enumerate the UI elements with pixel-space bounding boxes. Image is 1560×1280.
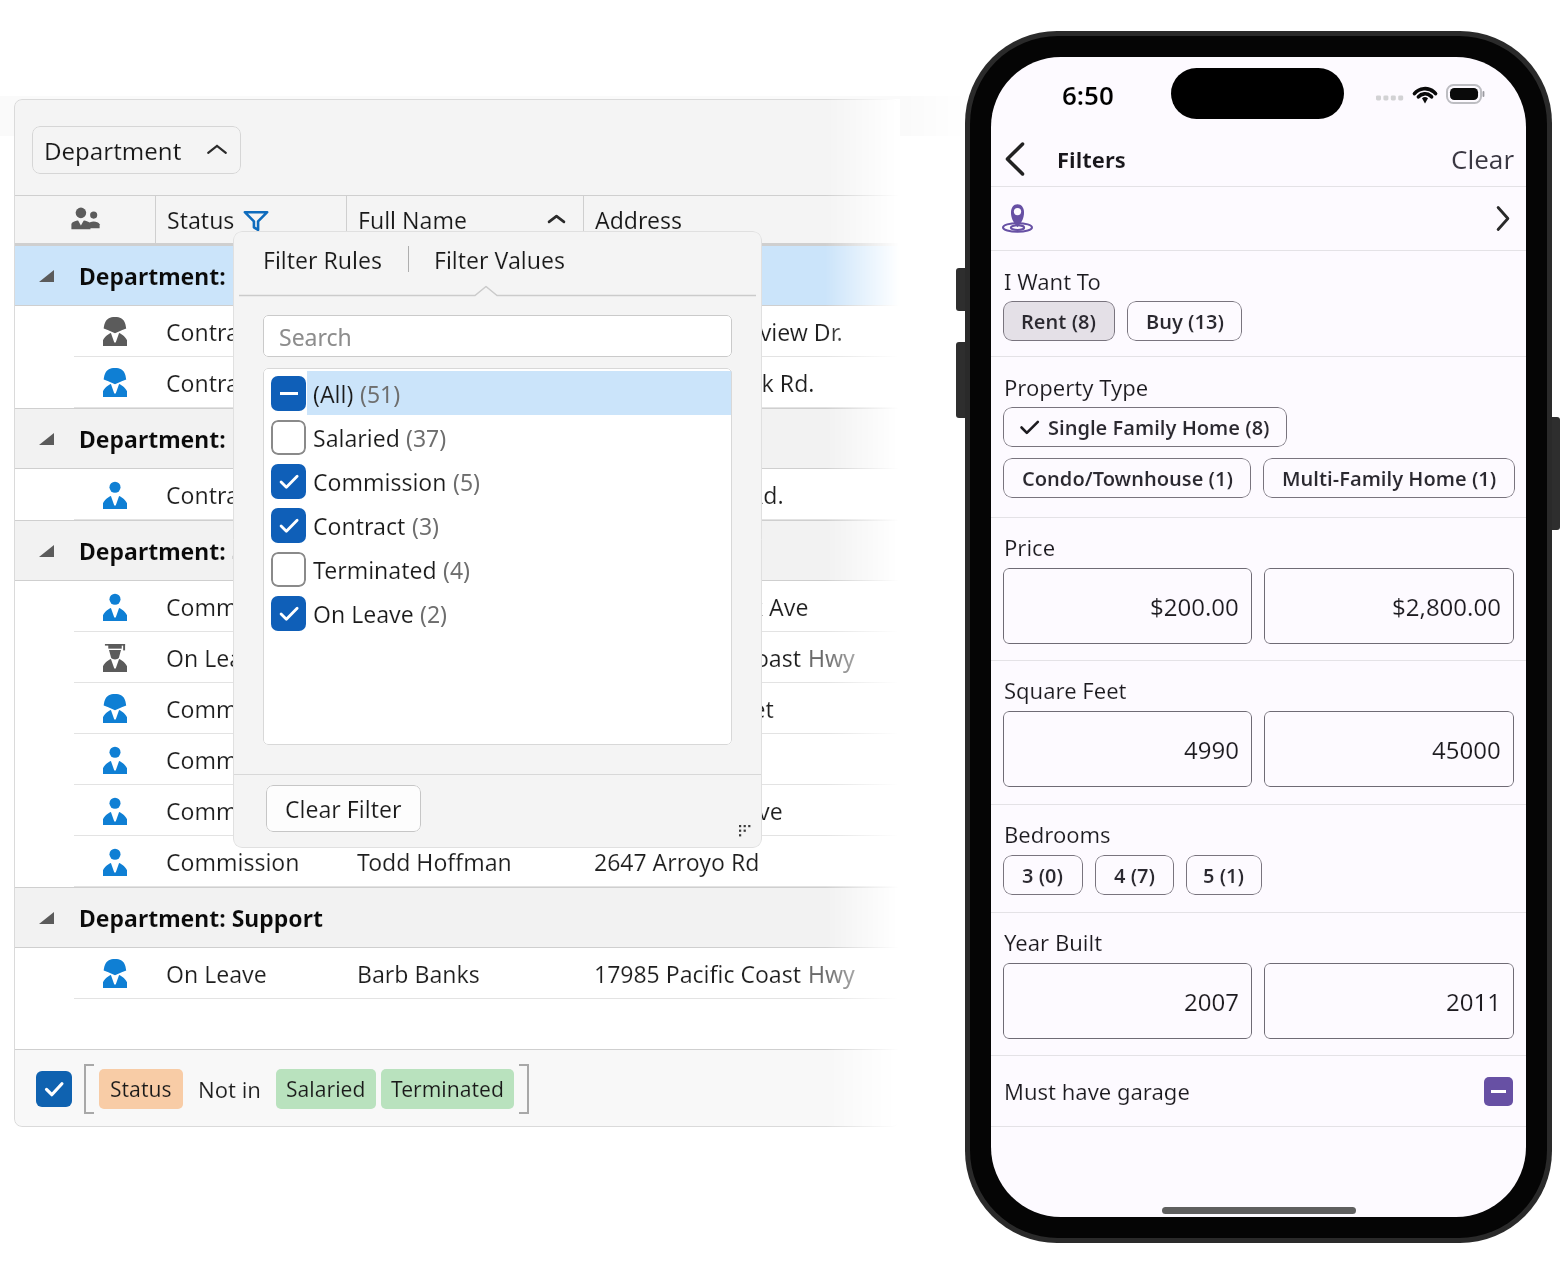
staticText: Commission <box>313 466 447 497</box>
staticText: 17985 Pacific Coast <box>594 958 808 989</box>
button[interactable]: 5 (1) <box>1186 855 1262 895</box>
staticText: Commission <box>166 591 300 622</box>
button[interactable]: Clear <box>1435 133 1526 184</box>
staticText: $200.00 <box>1150 590 1239 623</box>
staticText: Address <box>595 204 683 235</box>
staticText: Todd Hoffman <box>357 846 512 877</box>
staticText: I Want To <box>1004 266 1101 296</box>
button[interactable]: 4990 <box>1003 711 1252 787</box>
staticText: Joe Davis <box>357 479 455 510</box>
staticText: Not in <box>198 1074 261 1104</box>
button[interactable]: Buy (13) <box>1127 301 1242 341</box>
button[interactable]: Contract <box>14 469 900 520</box>
button[interactable] <box>991 187 1526 250</box>
staticText: 6:50 <box>1062 77 1114 112</box>
button[interactable]: Salaried <box>263 415 732 459</box>
button[interactable]: Contract <box>263 503 732 547</box>
staticText: On Leave <box>166 958 267 989</box>
button[interactable]: Commission <box>14 683 900 734</box>
button[interactable]: Department: Support <box>14 887 900 948</box>
staticText: Filter Values <box>434 244 565 275</box>
staticText: Contract <box>313 510 406 541</box>
staticText: Year Built <box>1004 927 1103 957</box>
staticText: Property Type <box>1004 372 1149 402</box>
button[interactable]: Terminated <box>381 1069 514 1109</box>
staticText: (2) <box>420 598 447 629</box>
staticText: Multi-Family Home (1) <box>1282 465 1497 492</box>
staticText: 4990 <box>1184 733 1239 766</box>
staticText: 5 (1) <box>1203 862 1245 889</box>
button[interactable]: Filter enabled <box>36 1071 72 1107</box>
button[interactable]: Single Family Home (8) <box>1003 407 1287 447</box>
button[interactable]: Condo/Townhouse (1) <box>1003 458 1251 498</box>
button[interactable]: Salaried <box>276 1069 376 1109</box>
button[interactable]: (All) <box>263 371 732 415</box>
staticText: 20 N Main Street <box>594 693 774 724</box>
button[interactable]: Department <box>32 126 241 174</box>
button[interactable]: On Leave <box>14 948 900 999</box>
button[interactable]: Commission <box>14 836 900 887</box>
staticText: $2,800.00 <box>1392 590 1501 623</box>
button[interactable]: 3 (0) <box>1003 855 1083 895</box>
staticText: Contract <box>166 316 259 347</box>
button[interactable]: Back <box>993 137 1037 181</box>
button[interactable]: Filter Values <box>431 238 568 281</box>
button[interactable]: Commission <box>14 734 900 785</box>
button[interactable]: Department: Engineering <box>14 245 900 306</box>
staticText: 44 Hill Rd <box>594 744 696 775</box>
button[interactable]: Search <box>263 315 732 357</box>
button[interactable]: On Leave <box>14 632 900 683</box>
staticText: Department: Marketing <box>79 423 352 454</box>
button[interactable]: Commission <box>14 785 900 836</box>
button[interactable]: On Leave <box>263 591 732 635</box>
button[interactable]: 2007 <box>1003 963 1252 1039</box>
button[interactable]: Department: Sales <box>14 520 900 581</box>
staticText: Bedrooms <box>1004 819 1111 849</box>
button[interactable]: Department: Marketing <box>14 408 900 469</box>
button[interactable]: 2011 <box>1264 963 1514 1039</box>
staticText: Commission <box>166 795 300 826</box>
staticText: Salaried <box>286 1075 366 1104</box>
staticText: Commission <box>166 693 300 724</box>
staticText: Status <box>167 204 235 235</box>
staticText: Single Family Home (8) <box>1048 414 1270 441</box>
button[interactable]: Status <box>99 1069 183 1109</box>
button[interactable]: Contract <box>14 357 900 408</box>
button[interactable]: Clear Filter <box>266 785 421 832</box>
staticText: (51) <box>360 378 401 409</box>
button[interactable]: Must have garage <box>991 1056 1526 1126</box>
staticText: Status <box>110 1075 172 1104</box>
button[interactable]: Rent (8) <box>1003 301 1115 341</box>
staticText: Square Feet <box>1004 675 1127 705</box>
staticText: Clear <box>1451 141 1515 176</box>
staticText: 760 Lakeview Ave <box>594 795 783 826</box>
staticText: 2011 <box>1446 985 1501 1018</box>
staticText: Search <box>279 321 352 352</box>
button[interactable]: Commission <box>263 459 732 503</box>
staticText: 2007 <box>1184 985 1239 1018</box>
staticText: Must have garage <box>1004 1076 1190 1106</box>
button[interactable]: Multi-Family Home (1) <box>1263 458 1515 498</box>
staticText: Price <box>1004 532 1056 562</box>
button[interactable]: $2,800.00 <box>1264 568 1514 644</box>
staticText: (3) <box>412 510 439 541</box>
staticText: Barb Banks <box>357 958 480 989</box>
staticText: Department: Sales <box>79 535 291 566</box>
button[interactable]: Filter Rules <box>260 238 386 281</box>
button[interactable]: Terminated <box>263 547 732 591</box>
staticText: Terminated <box>313 554 437 585</box>
staticText: On Leave <box>166 642 267 673</box>
button[interactable]: $200.00 <box>1003 568 1252 644</box>
button[interactable]: Commission <box>14 581 900 632</box>
button[interactable]: Contract <box>14 306 900 357</box>
button[interactable]: 4 (7) <box>1095 855 1174 895</box>
staticText: Clear Filter <box>285 793 402 824</box>
staticText: Condo/Townhouse (1) <box>1022 465 1233 492</box>
staticText: Contract <box>166 479 259 510</box>
staticText: 30 Spring Elm Rd. <box>594 479 784 510</box>
button[interactable]: 45000 <box>1264 711 1514 787</box>
staticText: Commission <box>166 846 300 877</box>
